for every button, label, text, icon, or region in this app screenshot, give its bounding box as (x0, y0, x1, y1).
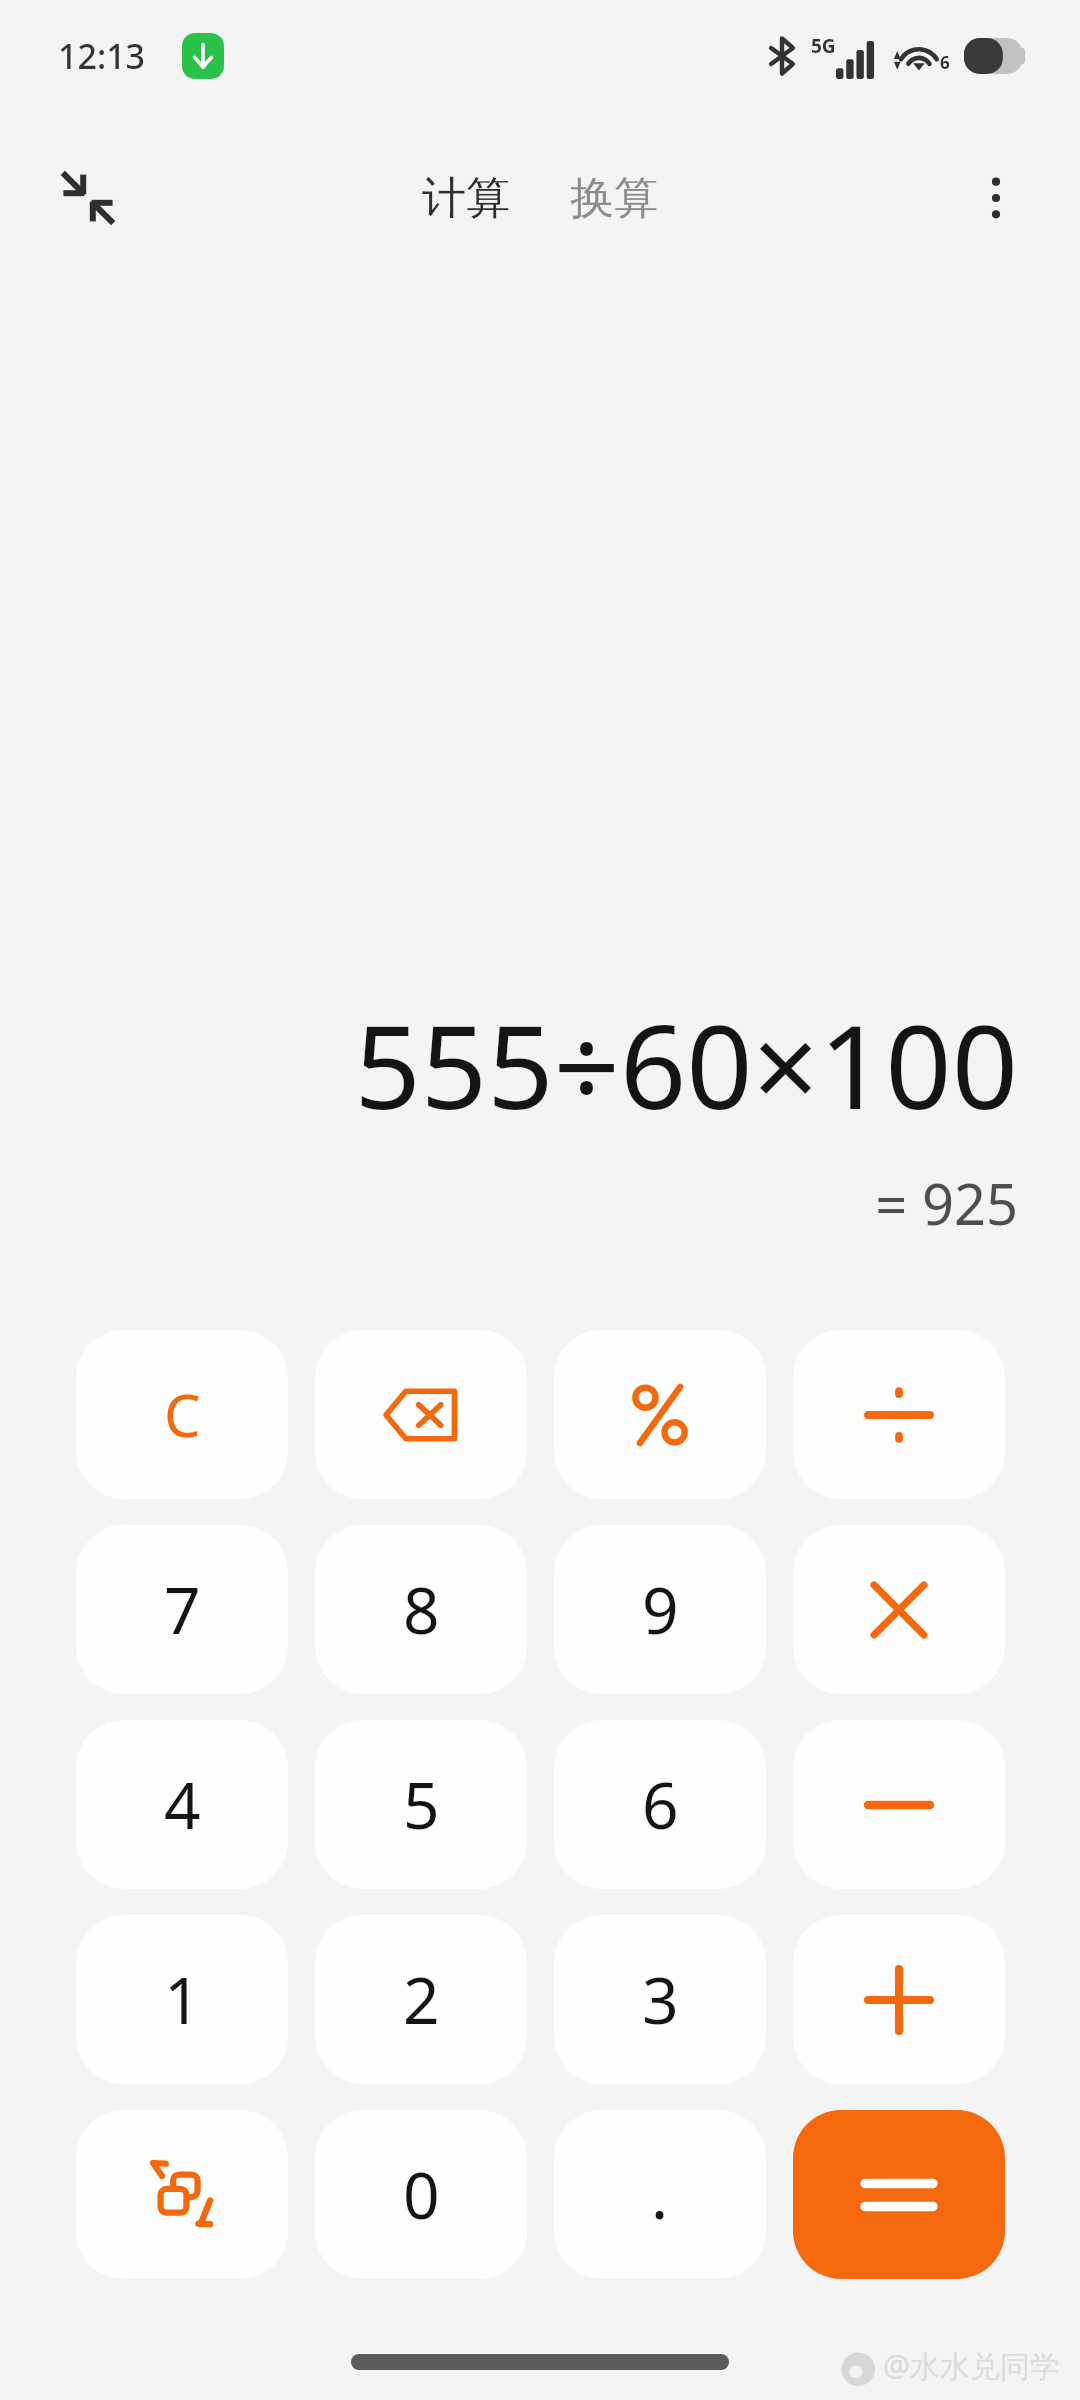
staticText: C (164, 1375, 201, 1454)
button[interactable]: 5 (315, 1720, 527, 1889)
staticText: 2 (403, 1956, 440, 2043)
staticText: = 925 (875, 1165, 1018, 1241)
staticText: 8 (403, 1566, 440, 1653)
staticText: 1 (164, 1956, 201, 2043)
button[interactable]: . (554, 2110, 766, 2279)
button[interactable]: Collapse (36, 146, 140, 250)
button[interactable]: Minus (793, 1720, 1005, 1889)
button[interactable]: Divide (793, 1330, 1005, 1499)
button[interactable]: 8 (315, 1525, 527, 1694)
staticText: 换算 (570, 171, 658, 226)
button[interactable]: Multiply (793, 1525, 1005, 1694)
button[interactable]: Clear (76, 1330, 288, 1499)
staticText: 555÷60×100 (354, 985, 1018, 1143)
button[interactable]: Convert units (76, 2110, 288, 2279)
staticText: . (651, 2151, 669, 2238)
button[interactable]: 计算 (408, 159, 524, 238)
staticText: 12:13 (58, 33, 146, 79)
staticText: 7 (164, 1566, 201, 1653)
button[interactable]: 4 (76, 1720, 288, 1889)
button[interactable]: Equals (793, 2110, 1005, 2279)
button[interactable]: 7 (76, 1525, 288, 1694)
button[interactable]: 换算 (556, 159, 672, 238)
staticText: 6 (642, 1761, 679, 1848)
button[interactable]: 2 (315, 1915, 527, 2084)
staticText: @水水兑同学 (883, 2345, 1060, 2386)
button[interactable]: 1 (76, 1915, 288, 2084)
staticText: 5G (811, 33, 836, 59)
staticText: 0 (403, 2151, 440, 2238)
staticText: 3 (642, 1956, 679, 2043)
staticText: 9 (642, 1566, 679, 1653)
button[interactable]: 9 (554, 1525, 766, 1694)
staticText: 4 (164, 1761, 201, 1848)
staticText: 6 (940, 51, 950, 74)
button[interactable]: 3 (554, 1915, 766, 2084)
button[interactable]: Percent (554, 1330, 766, 1499)
button[interactable]: Plus (793, 1915, 1005, 2084)
button[interactable]: 0 (315, 2110, 527, 2279)
staticText: 5 (403, 1761, 440, 1848)
button[interactable]: Backspace (315, 1330, 527, 1499)
staticText: 计算 (422, 171, 510, 226)
button[interactable]: More options (950, 152, 1042, 244)
button[interactable]: 6 (554, 1720, 766, 1889)
